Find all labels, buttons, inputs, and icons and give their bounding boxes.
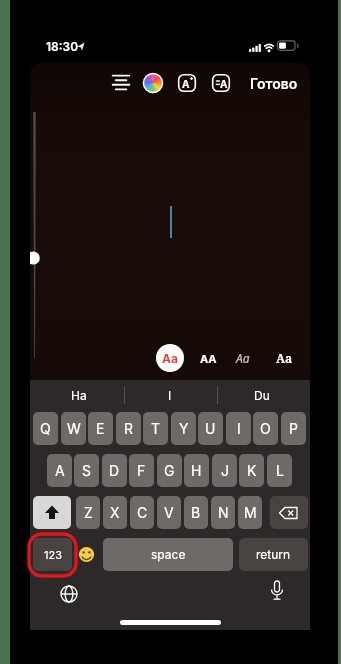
button[interactable]: I	[140, 383, 200, 407]
staticText: A	[55, 462, 65, 479]
button[interactable]	[270, 496, 308, 529]
button[interactable]: R	[116, 412, 141, 445]
staticText: F	[137, 462, 146, 479]
button[interactable]: space	[103, 538, 233, 571]
button[interactable]: Aa	[229, 344, 257, 372]
staticText: V	[164, 504, 174, 521]
staticText: 123	[44, 548, 62, 561]
button[interactable]: Q	[33, 412, 58, 445]
button[interactable]: Z	[76, 496, 100, 529]
staticText: N	[218, 504, 229, 521]
button[interactable]: Aa	[270, 344, 298, 372]
button[interactable]: V	[157, 496, 181, 529]
staticText: Готово	[250, 75, 298, 92]
staticText: Aa	[162, 351, 178, 366]
button[interactable]	[78, 546, 95, 563]
button[interactable]: C	[130, 496, 154, 529]
staticText: Du	[254, 388, 270, 403]
button[interactable]: На	[49, 383, 109, 407]
staticText: AA	[200, 352, 217, 365]
staticText: A	[182, 78, 190, 90]
staticText: space	[151, 547, 186, 562]
button[interactable]: 123	[33, 538, 72, 571]
staticText: 18:30	[46, 39, 79, 54]
staticText: I	[168, 388, 172, 403]
staticText: Aa	[276, 350, 293, 366]
button[interactable]	[108, 70, 134, 96]
button[interactable]: S	[74, 454, 99, 487]
button[interactable]: M	[238, 496, 262, 529]
staticText: return	[256, 547, 291, 562]
staticText: C	[137, 504, 148, 521]
button[interactable]: A	[212, 74, 230, 92]
staticText: D	[109, 462, 120, 479]
button[interactable]: A	[178, 74, 196, 92]
staticText: E	[96, 420, 105, 437]
staticText: K	[247, 462, 257, 479]
button[interactable]: F	[129, 454, 154, 487]
staticText: Q	[40, 420, 51, 437]
button[interactable]	[33, 496, 71, 529]
staticText: H	[191, 462, 202, 479]
button[interactable]: G	[157, 454, 182, 487]
staticText: I	[237, 420, 241, 437]
button[interactable]: Готово	[246, 70, 302, 96]
staticText: G	[164, 462, 175, 479]
button[interactable]: D	[102, 454, 127, 487]
button[interactable]: L	[267, 454, 292, 487]
button[interactable]: U	[198, 412, 223, 445]
button[interactable]: A	[47, 454, 72, 487]
button[interactable]: return	[239, 538, 308, 571]
button[interactable]: P	[281, 412, 306, 445]
button[interactable]	[268, 580, 286, 604]
staticText: X	[110, 504, 120, 521]
staticText: Aa	[236, 350, 250, 366]
staticText: T	[151, 420, 161, 437]
button[interactable]: Du	[232, 383, 292, 407]
staticText: O	[260, 420, 271, 437]
button[interactable]: X	[103, 496, 127, 529]
button[interactable]: O	[253, 412, 278, 445]
button[interactable]: Aa	[156, 344, 184, 372]
staticText: На	[71, 388, 87, 403]
button[interactable]: Y	[171, 412, 196, 445]
staticText: L	[276, 462, 284, 479]
button[interactable]: I	[226, 412, 251, 445]
button[interactable]	[59, 584, 79, 604]
staticText: J	[221, 462, 229, 479]
button[interactable]: N	[211, 496, 235, 529]
staticText: B	[191, 504, 201, 521]
staticText: Y	[179, 420, 189, 437]
staticText: S	[82, 462, 91, 479]
staticText: A	[220, 78, 228, 90]
staticText: Z	[84, 504, 93, 521]
button[interactable]: T	[143, 412, 168, 445]
staticText: R	[124, 420, 134, 437]
button[interactable]: K	[239, 454, 264, 487]
button[interactable]: J	[212, 454, 237, 487]
button[interactable]	[142, 72, 164, 94]
staticText: W	[67, 420, 81, 437]
button[interactable]: W	[61, 412, 86, 445]
staticText: P	[289, 420, 298, 437]
button[interactable]: B	[184, 496, 208, 529]
staticText: U	[205, 420, 216, 437]
button[interactable]: AA	[194, 344, 222, 372]
staticText: M	[244, 504, 257, 521]
button[interactable]: E	[88, 412, 113, 445]
button[interactable]: H	[184, 454, 209, 487]
